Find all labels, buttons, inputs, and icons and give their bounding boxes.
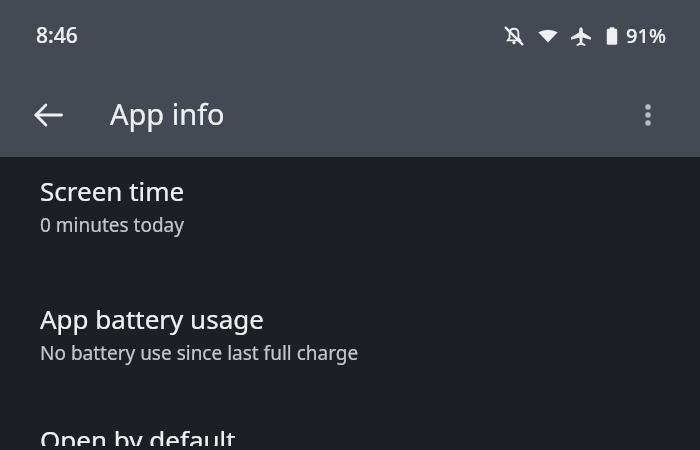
staticText: Screen time xyxy=(40,173,185,208)
staticText: 8:46 xyxy=(36,21,78,50)
button[interactable]: Open by default xyxy=(0,418,700,450)
button[interactable]: App battery usage xyxy=(0,297,700,370)
staticText: App info xyxy=(110,94,225,133)
button[interactable]: Back xyxy=(24,91,72,139)
button[interactable]: More options xyxy=(624,91,672,139)
staticText: 0 minutes today xyxy=(40,212,184,238)
staticText: App battery usage xyxy=(40,301,264,336)
button[interactable]: Screen time xyxy=(0,169,700,242)
staticText: No battery use since last full charge xyxy=(40,340,359,366)
staticText: 91% xyxy=(626,22,666,49)
staticText: Open by default xyxy=(40,422,236,446)
